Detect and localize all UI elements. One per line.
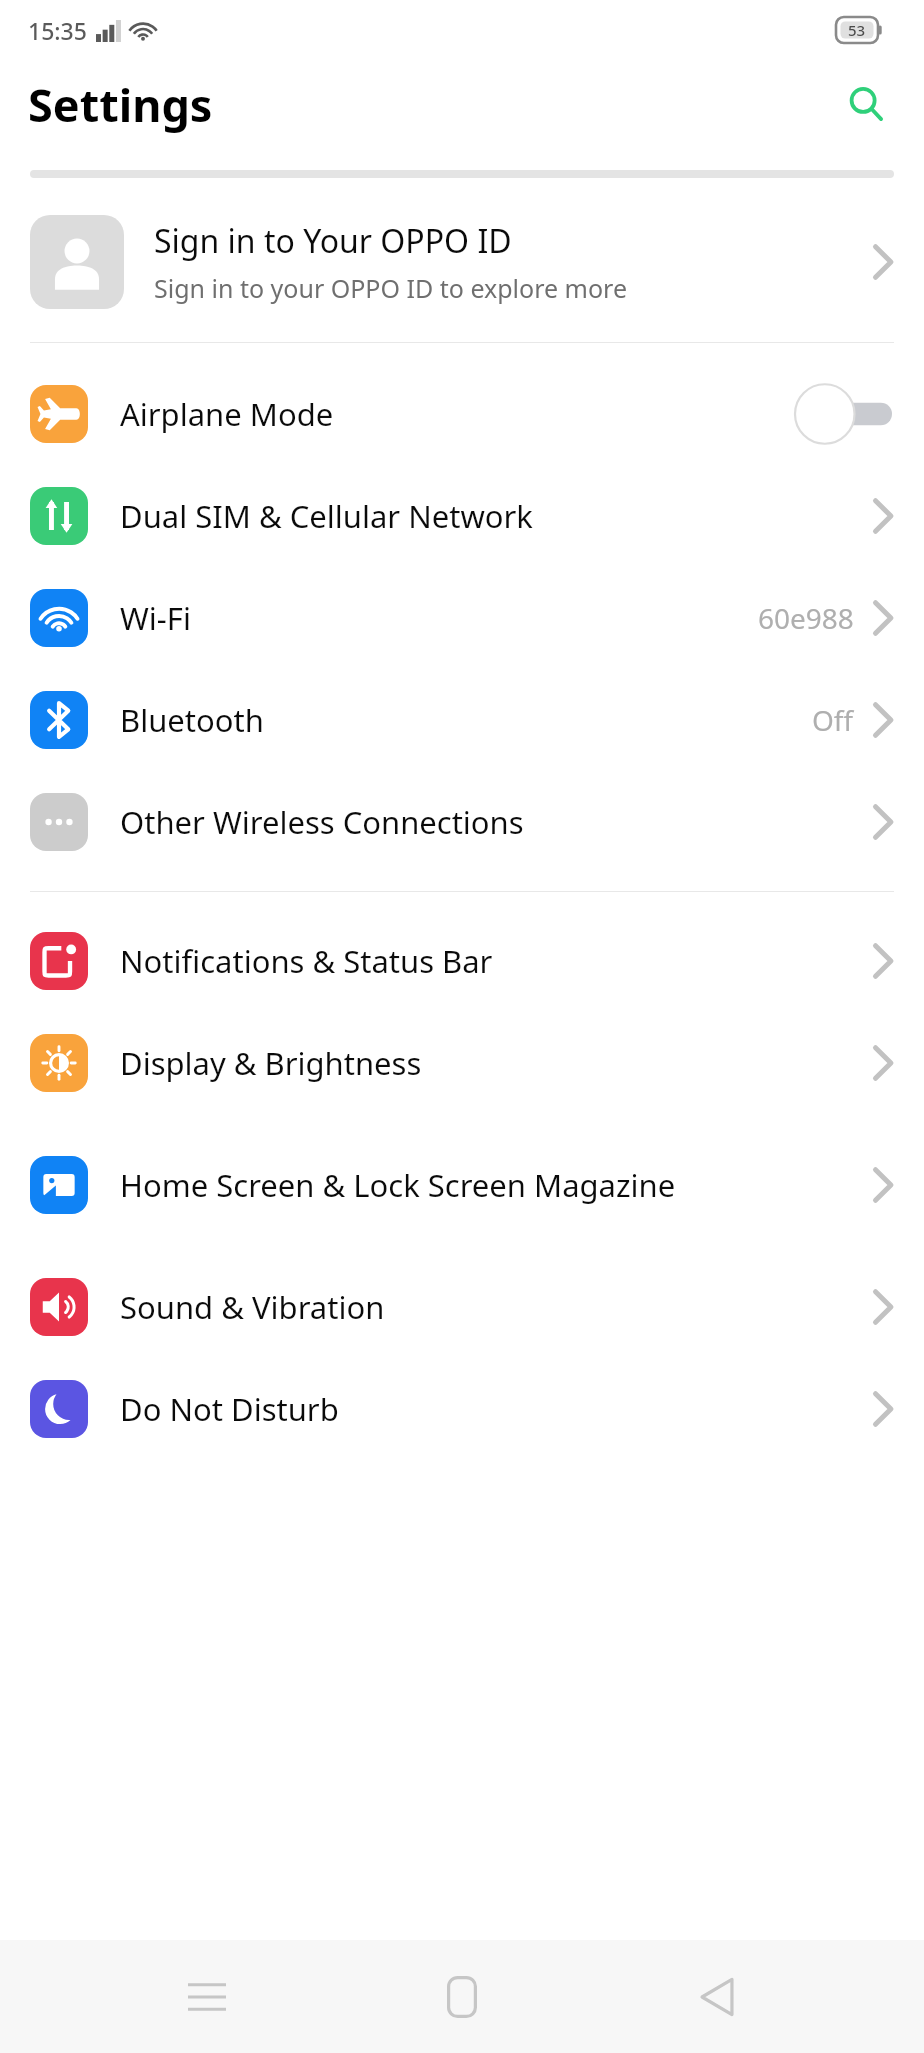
button[interactable]: Sound & Vibration — [0, 1256, 924, 1358]
button[interactable]: Do Not Disturb — [0, 1358, 924, 1460]
staticText: Sound & Vibration — [120, 1286, 872, 1328]
staticText: Display & Brightness — [120, 1042, 872, 1084]
button[interactable]: Airplane Mode — [0, 363, 924, 465]
button[interactable]: Sign in to Your OPPO ID — [0, 202, 924, 322]
button[interactable]: Other Wireless Connections — [0, 771, 924, 873]
staticText: 60e988 — [758, 599, 854, 637]
button[interactable]: Wi-Fi — [0, 567, 924, 669]
staticText: 53 — [848, 20, 866, 40]
staticText: Notifications & Status Bar — [120, 940, 872, 982]
staticText: Other Wireless Connections — [120, 801, 872, 843]
button[interactable]: Back — [669, 1949, 765, 2045]
staticText: Wi-Fi — [120, 597, 758, 639]
staticText: Home Screen & Lock Screen Magazine — [120, 1164, 872, 1206]
staticText: Bluetooth — [120, 699, 812, 741]
staticText: Off — [812, 701, 854, 739]
staticText: 15:35 — [28, 15, 87, 46]
button[interactable]: Home — [414, 1949, 510, 2045]
button[interactable]: Display & Brightness — [0, 1012, 924, 1114]
staticText: Do Not Disturb — [120, 1388, 872, 1430]
button[interactable]: Airplane Mode toggle — [794, 383, 894, 445]
staticText: Settings — [28, 74, 213, 135]
staticText: Sign in to your OPPO ID to explore more — [154, 271, 628, 305]
button[interactable]: Notifications & Status Bar — [0, 910, 924, 1012]
button[interactable]: Bluetooth — [0, 669, 924, 771]
button[interactable]: Search — [832, 70, 900, 138]
button[interactable]: Dual SIM & Cellular Network — [0, 465, 924, 567]
button[interactable]: Home Screen & Lock Screen Magazine — [0, 1114, 924, 1256]
staticText: Dual SIM & Cellular Network — [120, 495, 872, 537]
staticText: Airplane Mode — [120, 393, 794, 435]
staticText: Sign in to Your OPPO ID — [154, 219, 512, 263]
button[interactable]: Recent apps — [159, 1949, 255, 2045]
